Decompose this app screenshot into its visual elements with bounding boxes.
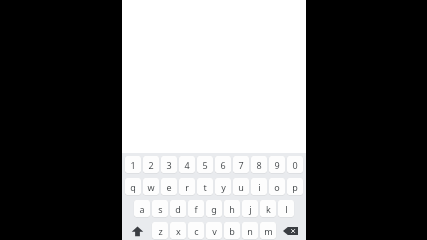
staticText: 7 xyxy=(238,159,244,171)
staticText: k xyxy=(266,203,271,215)
staticText: w xyxy=(147,181,155,193)
staticText: 4 xyxy=(184,159,190,171)
button[interactable]: q xyxy=(125,178,141,195)
button[interactable]: 7 xyxy=(233,156,249,173)
button[interactable]: p xyxy=(287,178,303,195)
staticText: t xyxy=(203,181,207,193)
button[interactable]: j xyxy=(242,200,258,217)
button[interactable]: z xyxy=(152,222,168,239)
button[interactable]: Backspace xyxy=(278,222,303,239)
button[interactable]: 2 xyxy=(143,156,159,173)
staticText: y xyxy=(221,181,226,193)
button[interactable]: 8 xyxy=(251,156,267,173)
staticText: s xyxy=(158,203,163,215)
button[interactable]: g xyxy=(206,200,222,217)
staticText: i xyxy=(258,181,261,193)
staticText: x xyxy=(176,225,181,237)
button[interactable]: 5 xyxy=(197,156,213,173)
staticText: 1 xyxy=(130,159,136,171)
staticText: r xyxy=(185,181,189,193)
button[interactable]: Shift xyxy=(125,222,150,239)
button[interactable]: y xyxy=(215,178,231,195)
staticText: 2 xyxy=(148,159,154,171)
button[interactable]: 1 xyxy=(125,156,141,173)
staticText: c xyxy=(194,225,199,237)
button[interactable]: l xyxy=(278,200,294,217)
button[interactable]: b xyxy=(224,222,240,239)
button[interactable]: i xyxy=(251,178,267,195)
button[interactable]: d xyxy=(170,200,186,217)
button[interactable]: w xyxy=(143,178,159,195)
staticText: o xyxy=(274,181,280,193)
staticText: n xyxy=(247,225,253,237)
staticText: m xyxy=(264,225,273,237)
button[interactable]: m xyxy=(260,222,276,239)
button[interactable]: r xyxy=(179,178,195,195)
button[interactable]: 6 xyxy=(215,156,231,173)
button[interactable]: u xyxy=(233,178,249,195)
staticText: q xyxy=(130,181,136,193)
button[interactable]: 9 xyxy=(269,156,285,173)
staticText: 8 xyxy=(256,159,262,171)
staticText: f xyxy=(194,203,198,215)
button[interactable]: 4 xyxy=(179,156,195,173)
staticText: 6 xyxy=(220,159,226,171)
staticText: p xyxy=(292,181,298,193)
staticText: 9 xyxy=(274,159,280,171)
staticText: e xyxy=(166,181,172,193)
button[interactable]: e xyxy=(161,178,177,195)
button[interactable]: t xyxy=(197,178,213,195)
button[interactable]: 0 xyxy=(287,156,303,173)
button[interactable]: a xyxy=(134,200,150,217)
button[interactable]: f xyxy=(188,200,204,217)
button[interactable]: c xyxy=(188,222,204,239)
staticText: a xyxy=(139,203,145,215)
button[interactable]: h xyxy=(224,200,240,217)
staticText: z xyxy=(158,225,163,237)
staticText: v xyxy=(212,225,217,237)
staticText: u xyxy=(238,181,244,193)
button[interactable]: x xyxy=(170,222,186,239)
staticText: d xyxy=(175,203,181,215)
button[interactable]: s xyxy=(152,200,168,217)
button[interactable]: n xyxy=(242,222,258,239)
staticText: l xyxy=(285,203,288,215)
staticText: 5 xyxy=(202,159,208,171)
staticText: g xyxy=(211,203,217,215)
staticText: 3 xyxy=(166,159,172,171)
staticText: b xyxy=(229,225,235,237)
button[interactable]: o xyxy=(269,178,285,195)
button[interactable]: v xyxy=(206,222,222,239)
button[interactable]: 3 xyxy=(161,156,177,173)
staticText: j xyxy=(249,203,252,215)
staticText: 0 xyxy=(292,159,298,171)
staticText: h xyxy=(229,203,235,215)
button[interactable]: k xyxy=(260,200,276,217)
